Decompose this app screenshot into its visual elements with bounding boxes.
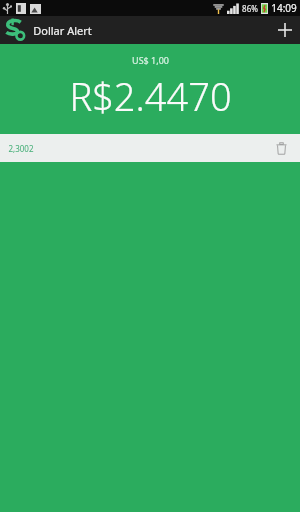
staticText: Dollar Alert [33, 23, 92, 38]
staticText: 86% [242, 3, 258, 14]
button[interactable]: Add alert [270, 16, 300, 44]
staticText: US$ 1,00 [132, 54, 169, 66]
button[interactable]: Delete alert [270, 137, 292, 159]
button[interactable]: 2,3002 [0, 134, 300, 162]
staticText: 14:09 [271, 1, 297, 15]
staticText: R$2.4470 [69, 70, 232, 122]
staticText: 2,3002 [8, 143, 34, 154]
